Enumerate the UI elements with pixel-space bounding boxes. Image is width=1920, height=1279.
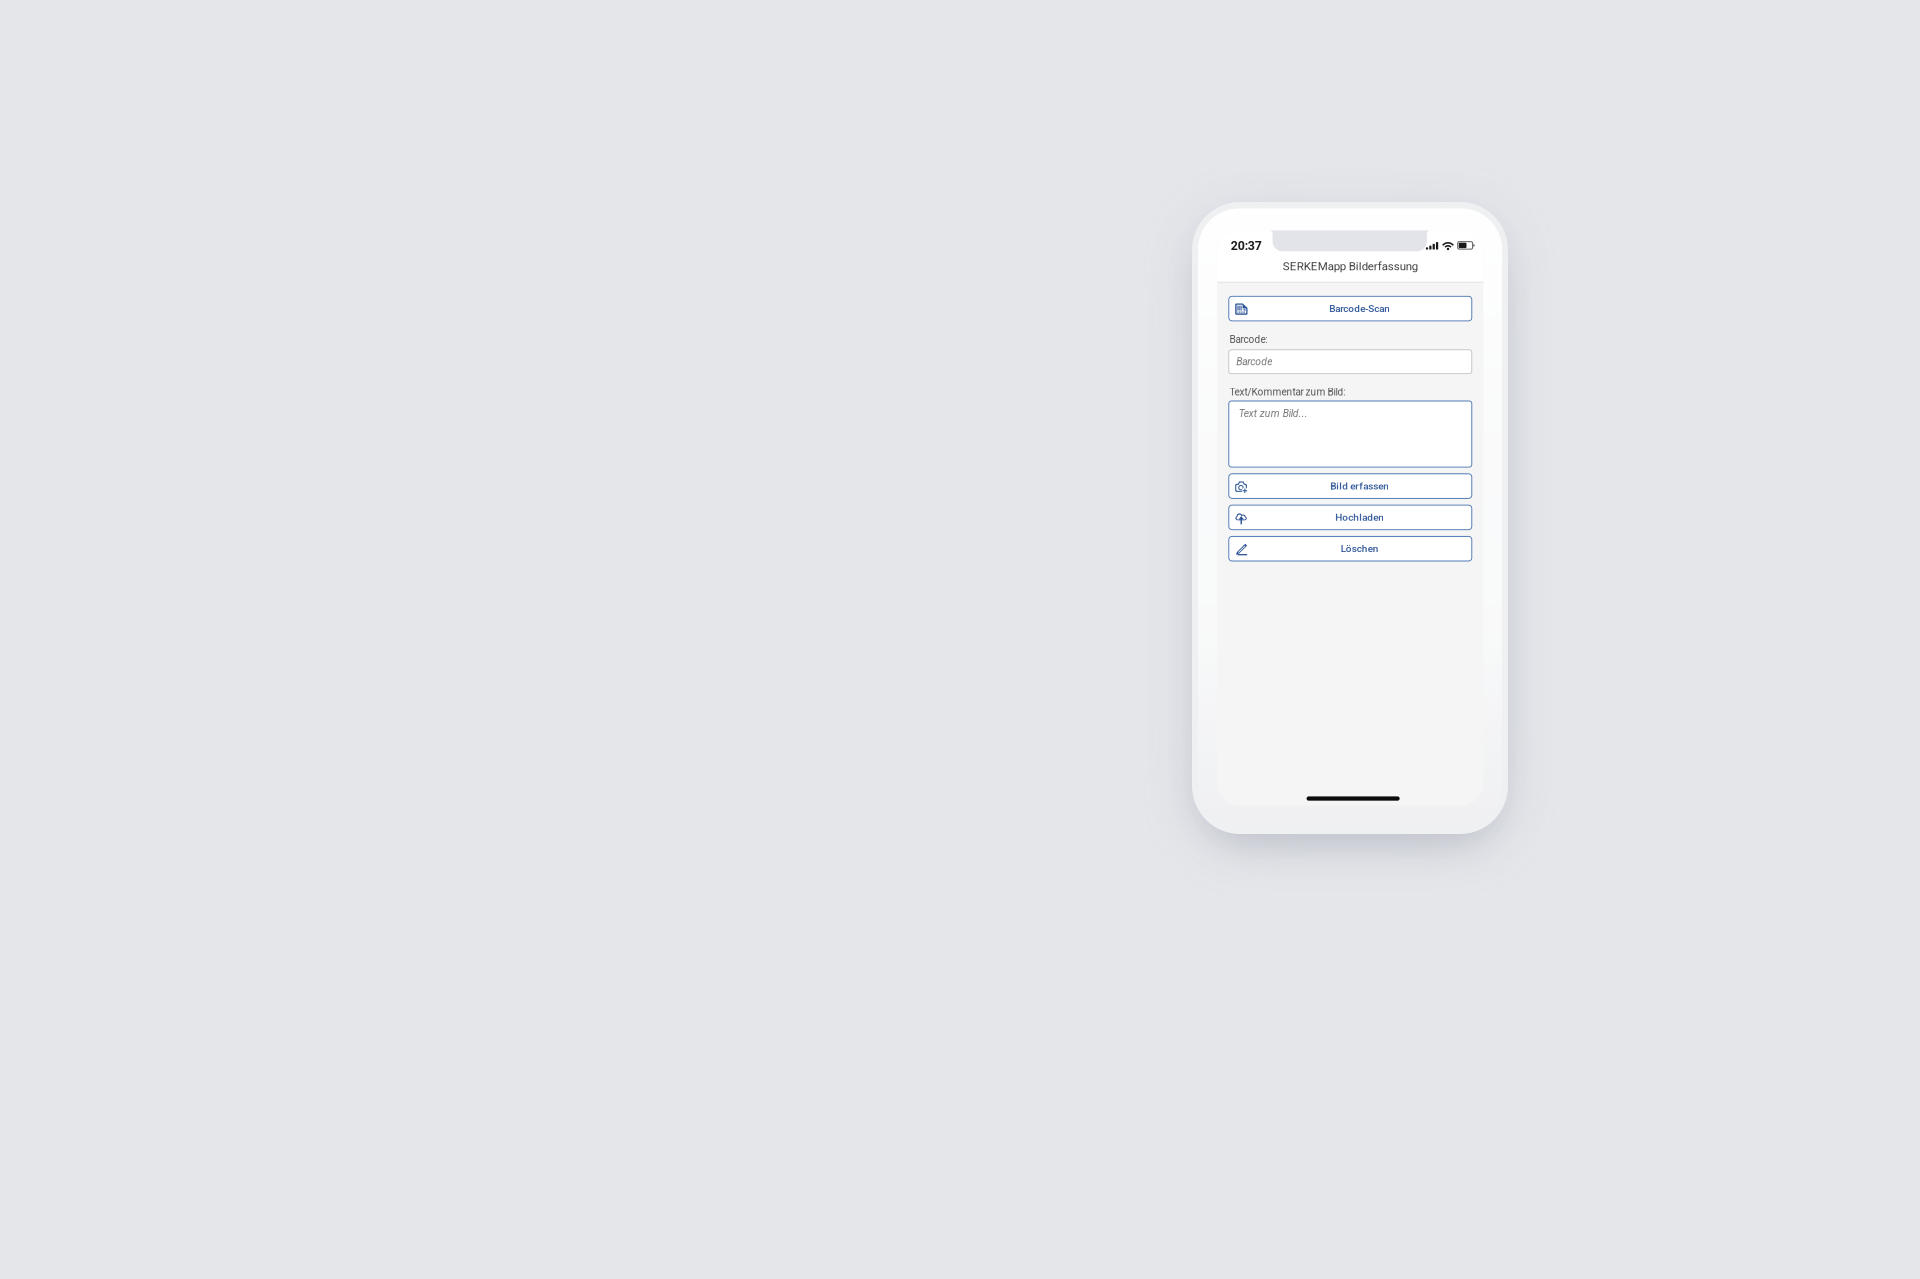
staticText: Barcode: — [1229, 334, 1267, 345]
staticText: Text/Kommentar zum Bild: — [1229, 386, 1345, 398]
button[interactable]: Hochladen — [1229, 505, 1472, 530]
button[interactable]: Löschen — [1229, 536, 1472, 561]
staticText: SERKEMapp Bilderfassung — [1283, 260, 1418, 273]
button[interactable]: Text zum Bild... — [1229, 401, 1472, 467]
staticText: Bild erfassen — [1330, 480, 1389, 492]
staticText: Text zum Bild... — [1239, 407, 1308, 419]
button[interactable]: Barcode-Scan — [1229, 296, 1472, 321]
staticText: Barcode-Scan — [1329, 303, 1390, 314]
staticText: Barcode — [1236, 356, 1272, 368]
staticText: 20:37 — [1231, 239, 1262, 253]
button[interactable]: Barcode — [1229, 350, 1472, 374]
button[interactable]: Bild erfassen — [1229, 474, 1472, 498]
staticText: Löschen — [1341, 543, 1379, 554]
staticText: Hochladen — [1335, 512, 1384, 523]
